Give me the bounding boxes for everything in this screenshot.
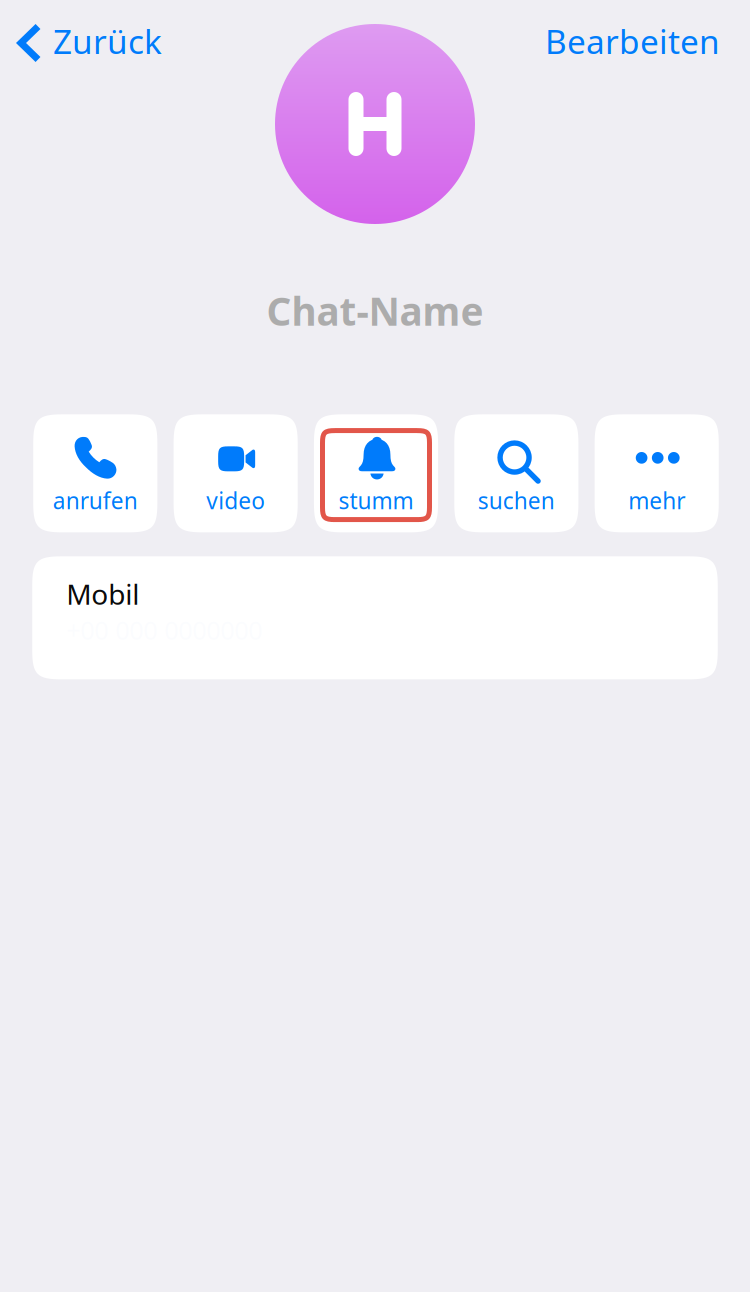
staticText: Zurück: [53, 19, 162, 63]
button[interactable]: Zurück: [0, 17, 162, 69]
staticText: suchen: [478, 485, 555, 515]
staticText: mehr: [628, 485, 685, 515]
button[interactable]: anrufen: [33, 414, 157, 532]
staticText: Mobil: [66, 575, 139, 612]
button[interactable]: Bearbeiten: [545, 17, 750, 69]
staticText: Chat-Name: [266, 285, 483, 336]
button[interactable]: suchen: [454, 414, 578, 532]
button[interactable]: Mobil: [32, 556, 718, 679]
button[interactable]: video: [174, 414, 298, 532]
button[interactable]: stumm: [314, 414, 438, 532]
staticText: anrufen: [53, 485, 138, 515]
button[interactable]: mehr: [595, 414, 719, 532]
staticText: video: [206, 485, 265, 515]
staticText: Bearbeiten: [545, 19, 720, 63]
staticText: stumm: [338, 485, 413, 515]
